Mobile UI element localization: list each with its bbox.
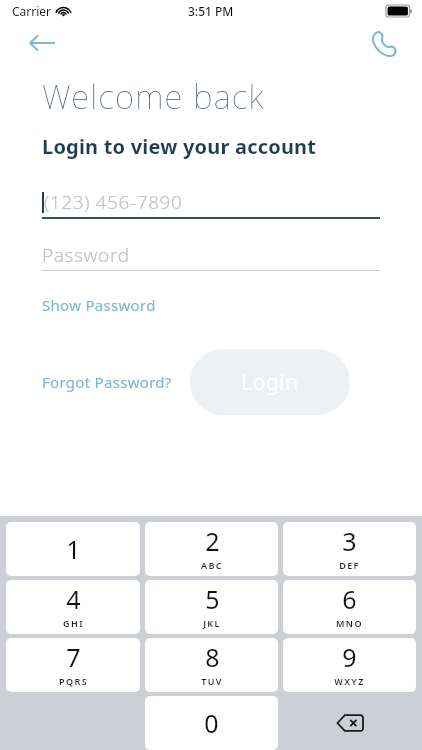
staticText: JKL (203, 617, 221, 629)
staticText: Carrier (12, 3, 52, 19)
button[interactable]: 5 (145, 580, 278, 634)
staticText: 3:51 PM (188, 3, 234, 19)
staticText: ABC (201, 559, 223, 571)
button[interactable]: 7 (6, 638, 140, 692)
staticText: Login (241, 368, 299, 397)
staticText: 0 (204, 706, 219, 740)
button[interactable]: 9 (283, 638, 416, 692)
staticText: (123) 456-7890 (44, 189, 183, 215)
button[interactable]: 8 (145, 638, 278, 692)
staticText: 4 (66, 582, 81, 616)
staticText: Show Password (42, 295, 156, 315)
button[interactable]: Login (190, 349, 350, 415)
staticText: DEF (339, 559, 360, 571)
staticText: Password (42, 242, 130, 268)
staticText: 6 (342, 582, 357, 616)
staticText: MNO (336, 617, 363, 629)
staticText: TUV (201, 675, 223, 687)
staticText: 7 (66, 640, 81, 674)
button[interactable]: 0 (145, 696, 278, 750)
staticText: 9 (342, 640, 357, 674)
staticText: 2 (205, 524, 220, 558)
button[interactable]: Call (362, 22, 404, 64)
staticText: 8 (205, 640, 220, 674)
button[interactable]: Password (42, 240, 380, 270)
staticText: PQRS (59, 675, 88, 687)
staticText: Login to view your account (42, 133, 317, 160)
button[interactable]: 3 (283, 522, 416, 576)
staticText: GHI (63, 617, 84, 629)
button[interactable]: (123) 456-7890 (42, 187, 380, 217)
button[interactable]: Show Password (42, 295, 156, 315)
button[interactable]: Delete (283, 696, 416, 750)
staticText: 5 (205, 582, 220, 616)
button[interactable]: 4 (6, 580, 140, 634)
button[interactable]: Forgot Password? (42, 372, 172, 392)
button[interactable]: 1 (6, 522, 140, 576)
button[interactable]: 2 (145, 522, 278, 576)
staticText: 1 (66, 532, 81, 566)
staticText: Forgot Password? (42, 372, 172, 392)
staticText: Welcome back (42, 74, 265, 119)
staticText: 3 (342, 524, 357, 558)
button[interactable]: Back (22, 23, 62, 63)
staticText: WXYZ (334, 675, 365, 687)
button[interactable]: 6 (283, 580, 416, 634)
